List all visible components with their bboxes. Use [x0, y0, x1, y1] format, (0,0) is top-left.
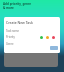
button[interactable]: Low priority — [40, 36, 43, 39]
staticText: Genre — [6, 42, 14, 46]
button[interactable]: High priority — [52, 36, 55, 39]
button[interactable]: Medium priority — [46, 36, 49, 39]
staticText: Priority — [6, 35, 15, 39]
staticText: Add priority, genre & more — [3, 2, 32, 10]
button[interactable]: ADD — [50, 46, 58, 50]
staticText: Task name — [6, 29, 19, 33]
staticText: Create New Task — [6, 20, 33, 25]
